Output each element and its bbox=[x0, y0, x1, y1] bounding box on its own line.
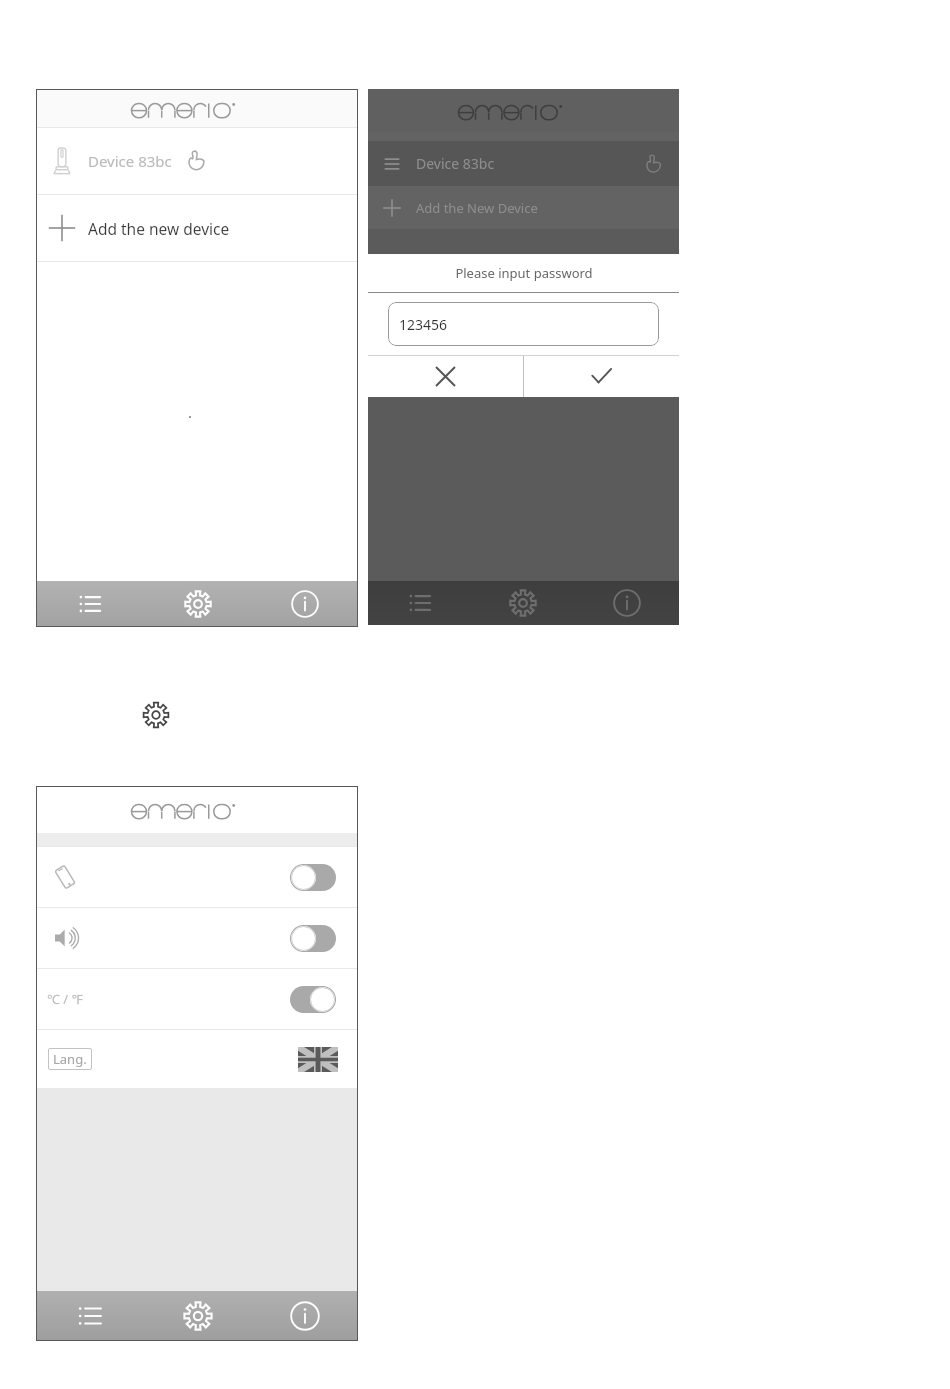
button[interactable]: Confirm bbox=[524, 356, 679, 397]
staticText: Add the New Device bbox=[416, 199, 538, 217]
button[interactable]: Cancel bbox=[368, 356, 523, 397]
button[interactable]: Toggle off bbox=[36, 847, 358, 907]
button[interactable]: Toggle off bbox=[290, 864, 336, 891]
staticText: Please input password bbox=[455, 264, 593, 282]
staticText: 123456 bbox=[399, 315, 448, 334]
button[interactable]: Settings bbox=[471, 581, 575, 625]
button[interactable]: Add the New Device bbox=[368, 186, 679, 229]
button[interactable]: Information bbox=[251, 1291, 358, 1341]
button[interactable]: Settings bbox=[144, 1291, 251, 1341]
button[interactable]: ℃ / ℉ bbox=[36, 969, 358, 1029]
staticText: Device 83bc bbox=[416, 154, 495, 173]
button[interactable]: Information bbox=[575, 581, 679, 625]
button[interactable]: Device list bbox=[368, 581, 471, 625]
button[interactable]: Device list bbox=[36, 1291, 144, 1341]
button[interactable]: Language English bbox=[298, 1047, 338, 1072]
button[interactable]: Information bbox=[251, 581, 358, 627]
button[interactable]: Lang. bbox=[36, 1030, 358, 1088]
staticText: Lang. bbox=[53, 1050, 87, 1068]
staticText: Add the new device bbox=[88, 218, 230, 239]
button[interactable]: Device list bbox=[36, 581, 144, 627]
staticText: Device 83bc bbox=[88, 151, 172, 171]
button[interactable]: Toggle off bbox=[36, 908, 358, 968]
button[interactable]: 123456 bbox=[388, 302, 659, 346]
button[interactable]: Device 83bc bbox=[36, 128, 358, 194]
button[interactable]: Settings bbox=[144, 581, 251, 627]
button[interactable]: Device 83bc bbox=[368, 141, 679, 186]
button[interactable]: Toggle off bbox=[290, 925, 336, 952]
button[interactable]: Settings bbox=[141, 700, 171, 730]
button[interactable]: Add the new device bbox=[36, 195, 358, 261]
staticText: ℃ / ℉ bbox=[47, 990, 83, 1008]
button[interactable]: Toggle on bbox=[290, 986, 336, 1013]
